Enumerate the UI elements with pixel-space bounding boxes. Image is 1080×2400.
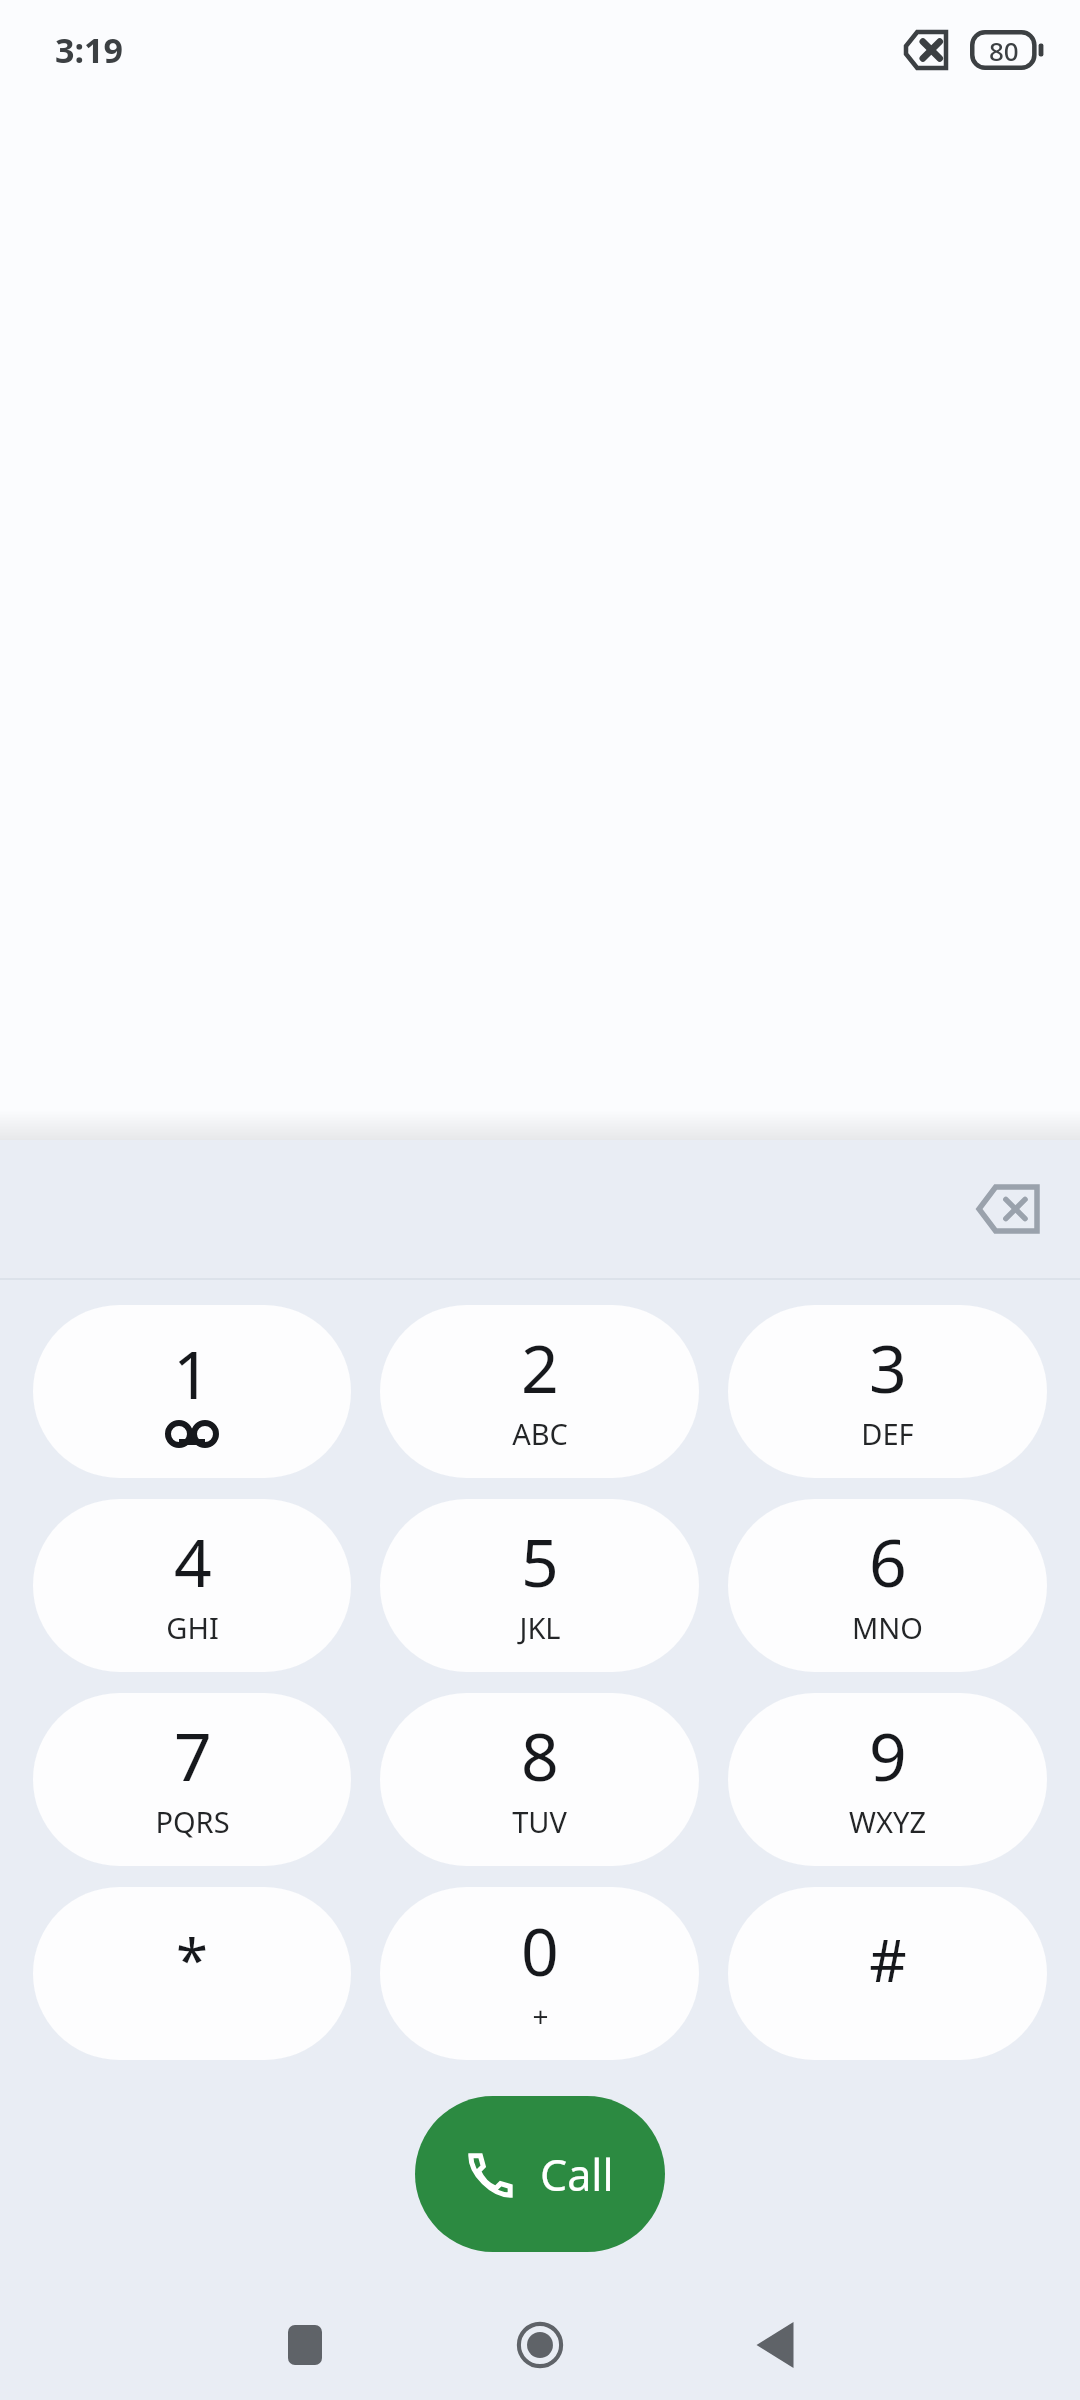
button[interactable]: Recent apps: [245, 2290, 365, 2400]
button[interactable]: Back: [715, 2290, 835, 2400]
staticText: MNO: [852, 1608, 923, 1647]
staticText: 4: [174, 1516, 212, 1606]
staticText: Call: [540, 2145, 614, 2204]
staticText: PQRS: [155, 1802, 230, 1841]
button[interactable]: *: [33, 1887, 351, 2060]
staticText: 7: [174, 1710, 212, 1800]
staticText: 6: [869, 1516, 907, 1606]
staticText: 9: [869, 1710, 907, 1800]
button[interactable]: 9: [728, 1693, 1047, 1866]
button[interactable]: 8: [380, 1693, 699, 1866]
button[interactable]: 5: [380, 1499, 699, 1672]
staticText: +: [532, 1997, 549, 2035]
staticText: 2: [521, 1322, 559, 1412]
button[interactable]: 2: [380, 1305, 699, 1478]
button[interactable]: 6: [728, 1499, 1047, 1672]
staticText: 3:19: [55, 27, 123, 73]
staticText: 3: [869, 1322, 907, 1412]
staticText: 8: [521, 1710, 559, 1800]
staticText: TUV: [512, 1802, 567, 1841]
staticText: *: [176, 1920, 208, 1999]
staticText: JKL: [519, 1608, 561, 1647]
staticText: 0: [521, 1905, 559, 1995]
button[interactable]: 0: [380, 1887, 699, 2060]
staticText: GHI: [166, 1608, 219, 1647]
staticText: DEF: [861, 1414, 914, 1453]
button[interactable]: 7: [33, 1693, 351, 1866]
button[interactable]: 3: [728, 1305, 1047, 1478]
button[interactable]: #: [728, 1887, 1047, 2060]
staticText: #: [869, 1920, 907, 1999]
staticText: 80: [989, 33, 1019, 68]
button[interactable]: Backspace: [960, 1161, 1056, 1257]
staticText: 1: [173, 1328, 211, 1418]
button[interactable]: 1: [33, 1305, 351, 1478]
button[interactable]: Call: [415, 2096, 665, 2252]
staticText: WXYZ: [849, 1802, 926, 1841]
staticText: ABC: [512, 1414, 568, 1453]
staticText: 5: [521, 1516, 559, 1606]
button[interactable]: Home: [480, 2290, 600, 2400]
button[interactable]: 4: [33, 1499, 351, 1672]
